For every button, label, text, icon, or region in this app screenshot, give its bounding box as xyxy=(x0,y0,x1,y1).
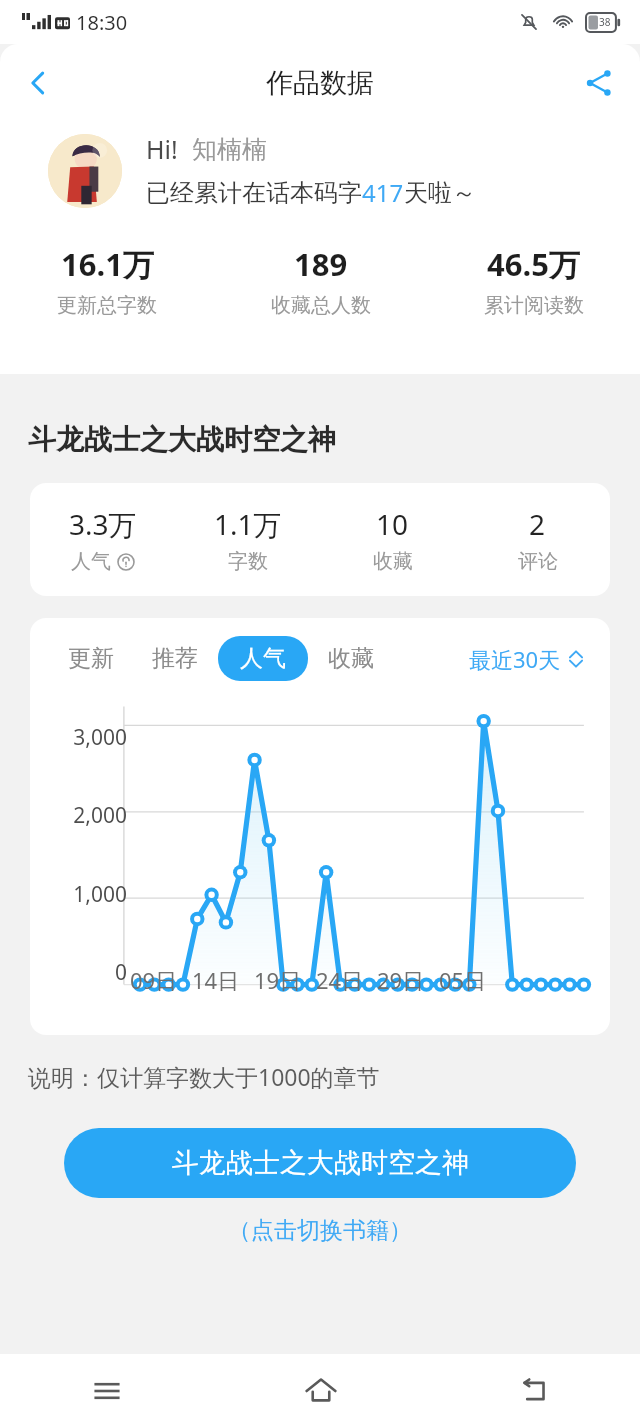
button[interactable]: 3.3万 xyxy=(30,505,175,574)
staticText: 作品数据 xyxy=(266,66,374,100)
staticText: 更新 xyxy=(68,644,114,673)
staticText: Hi! xyxy=(146,132,178,166)
staticText: 18:30 xyxy=(76,9,128,36)
staticText: 累计阅读数 xyxy=(484,293,584,318)
staticText: 189 xyxy=(294,243,348,285)
staticText: 说明：仅计算字数大于1000的章节 xyxy=(28,1061,380,1092)
staticText: 10 xyxy=(376,505,409,543)
staticText: 斗龙战士之大战时空之神 xyxy=(28,422,336,457)
staticText: 天啦～ xyxy=(404,178,476,208)
button[interactable]: 收藏 xyxy=(326,636,376,681)
staticText: 38 xyxy=(599,15,611,29)
button[interactable]: 最近30天 xyxy=(469,644,584,674)
staticText: 46.5万 xyxy=(487,243,580,285)
button[interactable]: 16.1万 xyxy=(0,243,214,318)
staticText: 最近30天 xyxy=(469,644,561,674)
staticText: 收藏 xyxy=(328,644,374,673)
button[interactable]: 1.1万 xyxy=(175,505,320,574)
staticText: 评论 xyxy=(518,549,558,574)
staticText: 斗龙战士之大战时空之神 xyxy=(172,1146,469,1180)
staticText: 29日 xyxy=(377,965,425,995)
button[interactable]: Recents xyxy=(0,1354,214,1428)
staticText: 1.1万 xyxy=(214,505,282,543)
staticText: 3.3万 xyxy=(69,505,137,543)
button[interactable]: 人气 xyxy=(218,636,308,681)
staticText: 人气 xyxy=(71,549,111,574)
button[interactable]: 10 xyxy=(320,505,465,574)
staticText: 更新总字数 xyxy=(57,293,157,318)
staticText: 知楠楠 xyxy=(192,134,267,165)
staticText: 24日 xyxy=(316,965,364,995)
staticText: 2,000 xyxy=(73,801,127,830)
button[interactable]: Back xyxy=(427,1354,640,1428)
button[interactable]: 189 xyxy=(214,243,427,318)
button[interactable]: 推荐 xyxy=(150,636,200,681)
staticText: 1,000 xyxy=(73,880,127,909)
staticText: 字数 xyxy=(228,549,268,574)
button[interactable]: 46.5万 xyxy=(427,243,640,318)
staticText: （点击切换书籍） xyxy=(228,1216,412,1245)
button[interactable]: Avatar xyxy=(48,134,122,208)
staticText: 人气 xyxy=(240,644,286,673)
staticText: 收藏总人数 xyxy=(271,293,371,318)
staticText: 2 xyxy=(529,505,546,543)
button[interactable]: Home xyxy=(214,1354,427,1428)
staticText: 收藏 xyxy=(373,549,413,574)
button[interactable]: 斗龙战士之大战时空之神 xyxy=(64,1128,576,1198)
staticText: 417 xyxy=(362,176,404,209)
button[interactable]: 2 xyxy=(465,505,610,574)
button[interactable]: Share xyxy=(570,54,628,112)
staticText: 3,000 xyxy=(73,723,127,752)
staticText: 09日 xyxy=(130,965,178,995)
staticText: 已经累计在话本码字 xyxy=(146,178,362,208)
button[interactable]: （点击切换书籍） xyxy=(0,1216,640,1245)
button[interactable]: Back xyxy=(8,53,68,113)
staticText: 推荐 xyxy=(152,644,198,673)
staticText: 16.1万 xyxy=(61,243,154,285)
staticText: 19日 xyxy=(254,965,302,995)
staticText: 14日 xyxy=(192,965,240,995)
staticText: 05日 xyxy=(439,965,487,995)
staticText: 0 xyxy=(114,958,127,987)
button[interactable]: 更新 xyxy=(66,636,116,681)
